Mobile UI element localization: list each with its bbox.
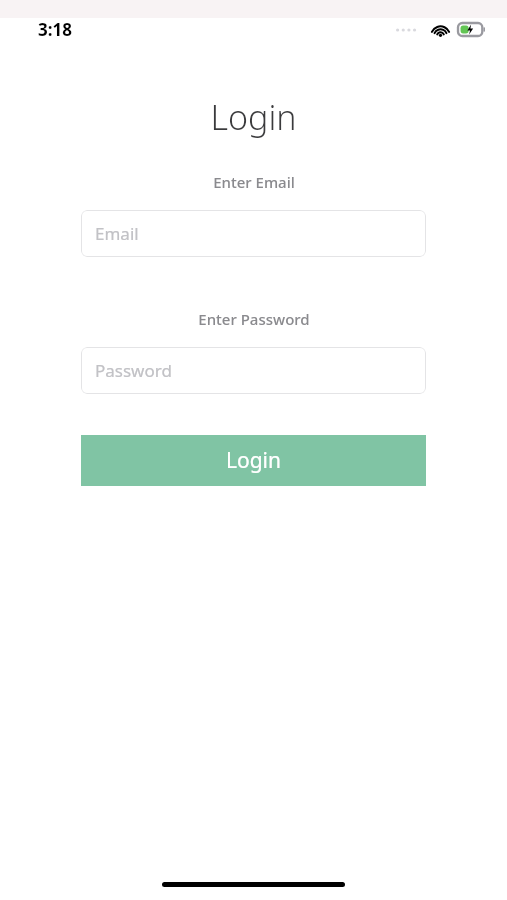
- staticText: Email: [95, 222, 139, 245]
- staticText: Enter Email: [213, 172, 295, 192]
- button[interactable]: Email: [81, 210, 426, 257]
- staticText: Enter Password: [198, 309, 310, 329]
- button[interactable]: Password: [81, 347, 426, 394]
- button[interactable]: Login: [81, 435, 426, 486]
- staticText: Login: [226, 446, 282, 475]
- staticText: Login: [210, 94, 297, 140]
- staticText: 3:18: [38, 18, 72, 41]
- staticText: Password: [95, 359, 172, 382]
